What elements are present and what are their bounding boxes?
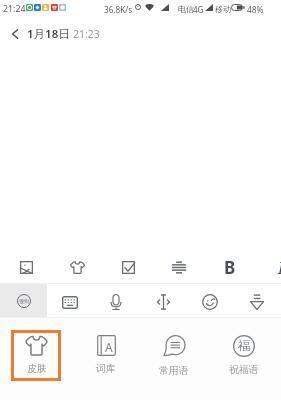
staticText: 21:24 (3, 3, 26, 15)
button[interactable]: A (81, 330, 131, 381)
staticText: 电信 (178, 4, 194, 14)
button[interactable]: Keyboard (53, 284, 87, 318)
staticText: 福 (238, 338, 251, 354)
staticText: I (278, 256, 281, 279)
button[interactable]: Insert image (7, 246, 45, 284)
staticText: 36.8K/s (104, 4, 133, 15)
button[interactable]: Checklist (109, 246, 147, 284)
staticText: 祝福语 (229, 364, 259, 376)
staticText: 搜狗 (19, 298, 29, 304)
button[interactable]: Hide keyboard (240, 284, 274, 318)
staticText: 4G (193, 4, 204, 15)
button[interactable]: Emoji (193, 284, 227, 318)
staticText: 皮肤 (27, 363, 47, 375)
staticText: 移动 (215, 4, 231, 14)
button[interactable]: Align (160, 246, 198, 284)
staticText: 1月18日 (27, 26, 70, 42)
staticText: 21:23 (73, 27, 100, 41)
button[interactable]: 常用语 (149, 330, 199, 381)
staticText: 词库 (96, 363, 116, 375)
button[interactable]: Italic (262, 246, 281, 284)
staticText: B (224, 256, 236, 279)
button[interactable]: 福 (219, 330, 269, 381)
staticText: 48% (247, 4, 264, 15)
button[interactable]: 皮肤 (11, 330, 61, 381)
button[interactable]: Skin (58, 246, 96, 284)
staticText: A (105, 339, 113, 355)
staticText: 常用语 (159, 365, 189, 377)
button[interactable]: Bold (211, 246, 249, 284)
button[interactable]: Back (3, 22, 27, 46)
button[interactable]: Voice input (99, 284, 133, 318)
button[interactable]: Move cursor (146, 284, 180, 318)
button[interactable]: Sogou input method (0, 284, 47, 318)
